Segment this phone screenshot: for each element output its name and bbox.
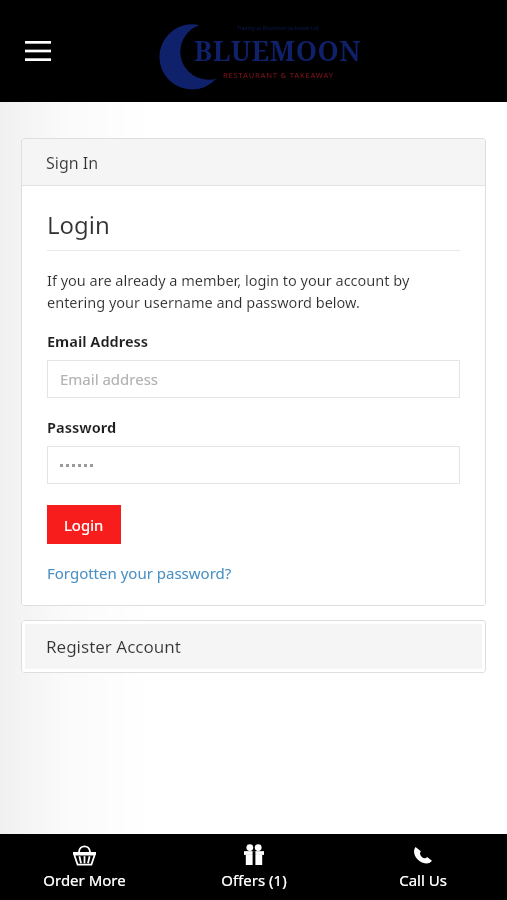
- staticText: Call Us: [399, 870, 447, 890]
- staticText: Trading as Bluemoon Jacksdale Ltd: [237, 25, 319, 32]
- staticText: BLUEMOON: [194, 32, 362, 69]
- staticText: RESTAURANT & TAKEAWAY: [223, 70, 334, 80]
- button[interactable]: Login: [47, 505, 121, 544]
- staticText: Login: [64, 515, 104, 535]
- staticText: Login: [47, 208, 110, 241]
- button[interactable]: Blue Moon Restaurant and Takeaway home: [165, 14, 365, 88]
- staticText: Password: [47, 417, 117, 437]
- button[interactable]: Sign In: [22, 139, 485, 186]
- staticText: Email Address: [47, 331, 149, 351]
- staticText: Order More: [43, 870, 126, 890]
- button[interactable]: [47, 446, 460, 484]
- button[interactable]: Call Us: [338, 834, 507, 900]
- button[interactable]: Offers (1): [169, 834, 338, 900]
- staticText: Forgotten your password?: [47, 563, 232, 583]
- button[interactable]: Register Account: [25, 624, 482, 669]
- button[interactable]: Open menu: [14, 27, 62, 75]
- staticText: Sign In: [46, 152, 99, 174]
- staticText: If you are already a member, login to yo…: [47, 270, 460, 312]
- staticText: Offers (1): [221, 870, 287, 890]
- button[interactable]: Order More: [0, 834, 169, 900]
- staticText: Email address: [60, 369, 159, 389]
- staticText: Register Account: [46, 635, 181, 658]
- button[interactable]: Forgotten your password?: [47, 563, 232, 583]
- button[interactable]: Email address: [47, 360, 460, 398]
